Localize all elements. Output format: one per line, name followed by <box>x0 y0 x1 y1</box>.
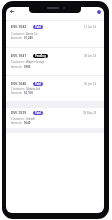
staticText: INV-1042 <box>11 24 27 29</box>
staticText: 08 Jun 24 <box>84 54 97 58</box>
staticText: Initech <box>26 117 36 121</box>
staticText: INV-1040 <box>11 81 27 86</box>
staticText: 02 Jun 24 <box>84 82 97 86</box>
staticText: Amount: <box>11 91 24 95</box>
button[interactable]: INV-1040 <box>6 75 104 101</box>
staticText: Customer: <box>11 117 26 121</box>
staticText: Wayne Group <box>26 60 44 64</box>
staticText: Pending <box>35 54 46 58</box>
staticText: Globex Ltd <box>26 87 41 91</box>
staticText: 28 May 24 <box>83 111 97 115</box>
staticText: $980 <box>24 65 31 69</box>
button[interactable]: Profile <box>94 7 103 16</box>
staticText: Acme Co <box>26 32 38 36</box>
staticText: 12 Jun 24 <box>84 25 97 29</box>
staticText: Amount: <box>11 36 24 40</box>
staticText: INV-1039 <box>11 110 27 115</box>
staticText: Customer: <box>11 32 26 36</box>
staticText: Amount: <box>11 65 24 69</box>
staticText: INV-1041 <box>11 53 27 58</box>
button[interactable]: INV-1039 <box>6 108 104 128</box>
staticText: Customer: <box>11 60 26 64</box>
staticText: $640 <box>24 121 31 125</box>
button[interactable]: INV-1041 <box>6 47 104 74</box>
staticText: Amount: <box>11 121 24 125</box>
staticText: Paid <box>35 111 41 115</box>
button[interactable]: Back <box>7 7 16 16</box>
staticText: $2,150 <box>24 91 33 95</box>
staticText: Paid <box>35 82 41 86</box>
staticText: Paid <box>35 25 41 29</box>
staticText: $1,240 <box>24 36 33 40</box>
staticText: Customer: <box>11 87 26 91</box>
button[interactable]: INV-1042 <box>6 21 104 47</box>
